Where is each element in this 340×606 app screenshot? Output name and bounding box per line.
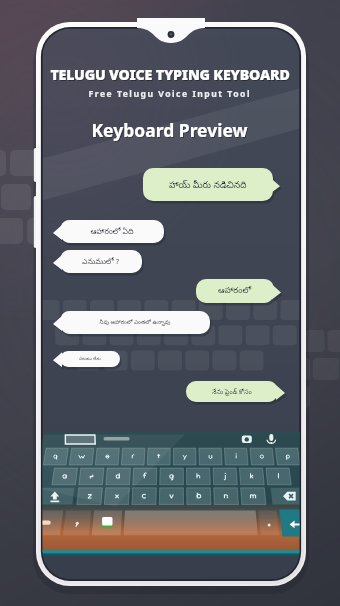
button[interactable]: Enter key xyxy=(264,518,306,546)
button[interactable]: Voice input xyxy=(272,430,296,446)
button[interactable]: Camera xyxy=(246,430,270,446)
button[interactable]: Message short xyxy=(60,352,122,372)
button[interactable]: Message reply one xyxy=(60,220,165,246)
button[interactable]: Message: last xyxy=(186,382,276,406)
button[interactable]: Space bar xyxy=(34,518,306,548)
button[interactable]: Keyboard home row xyxy=(38,466,300,490)
button[interactable]: Message: Hello xyxy=(143,168,273,202)
button[interactable]: Message: greeting xyxy=(194,279,274,305)
button[interactable]: Keyboard bottom letters xyxy=(36,492,302,518)
button[interactable]: Keyboard number row xyxy=(44,444,296,466)
button[interactable]: Message long xyxy=(60,312,208,340)
button[interactable]: Message reply two xyxy=(60,250,142,276)
